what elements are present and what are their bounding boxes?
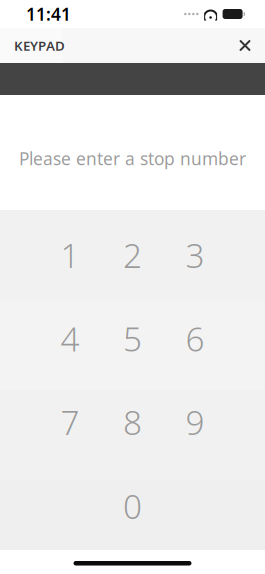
staticText: 7 xyxy=(60,400,79,444)
button[interactable]: 0 xyxy=(101,475,163,537)
staticText: 4 xyxy=(60,316,79,361)
button[interactable]: 8 xyxy=(101,391,163,453)
staticText: Please enter a stop number xyxy=(19,147,246,170)
staticText: 8 xyxy=(123,400,142,444)
staticText: KEYPAD xyxy=(14,37,65,54)
staticText: 1 xyxy=(60,233,79,277)
staticText: 0 xyxy=(123,484,142,528)
staticText: 6 xyxy=(185,316,204,361)
button[interactable]: 2 xyxy=(101,224,163,286)
button[interactable]: 5 xyxy=(101,307,163,369)
staticText: 3 xyxy=(185,233,204,277)
staticText: 9 xyxy=(185,400,204,444)
staticText: 11:41 xyxy=(26,2,71,25)
button[interactable]: 7 xyxy=(39,391,101,453)
button[interactable]: 9 xyxy=(164,391,226,453)
button[interactable]: 1 xyxy=(39,224,101,286)
button[interactable]: Close xyxy=(225,28,265,63)
button[interactable]: KEYPAD xyxy=(0,28,79,63)
staticText: 5 xyxy=(123,316,142,361)
button[interactable]: 6 xyxy=(164,307,226,369)
button[interactable]: 4 xyxy=(39,307,101,369)
staticText: 2 xyxy=(123,233,142,277)
button[interactable]: 3 xyxy=(164,224,226,286)
